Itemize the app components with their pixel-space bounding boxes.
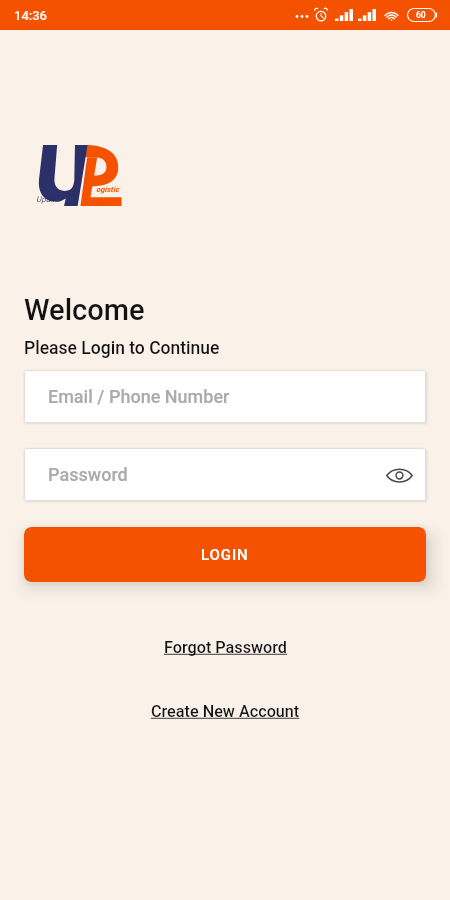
staticText: LOGIN <box>201 546 249 564</box>
staticText: Email / Phone Number <box>48 386 230 407</box>
button[interactable]: Forgot Password <box>154 633 297 662</box>
button[interactable]: Password <box>24 448 426 501</box>
button[interactable]: Email / Phone Number <box>24 370 426 423</box>
staticText: 60 <box>416 10 426 20</box>
button[interactable]: LOGIN <box>24 527 426 582</box>
staticText: Welcome <box>24 293 145 327</box>
button[interactable]: Create New Account <box>141 697 310 726</box>
staticText: Forgot Password <box>164 638 287 657</box>
staticText: Upahar <box>36 195 62 204</box>
button[interactable]: Show password <box>383 459 415 491</box>
staticText: Create New Account <box>151 702 300 721</box>
staticText: Please Login to Continue <box>24 338 220 359</box>
staticText: 14:36 <box>14 8 48 23</box>
staticText: ogistic <box>96 185 119 194</box>
staticText: Password <box>48 464 128 485</box>
